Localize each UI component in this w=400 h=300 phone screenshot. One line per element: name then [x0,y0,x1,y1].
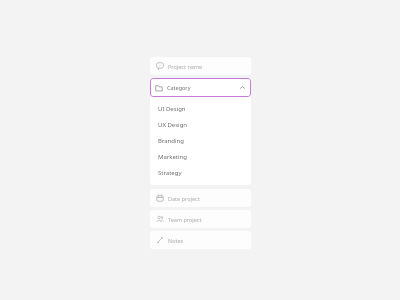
staticText: Team project [168,216,202,223]
staticText: Branding [158,137,184,145]
staticText: Category [167,84,191,91]
button[interactable]: Notes [150,231,251,249]
staticText: Date project [168,195,200,202]
button[interactable]: Marketing [150,149,251,165]
staticText: UI Design [158,105,186,113]
staticText: Project name [168,63,203,70]
button[interactable]: UI Design [150,101,251,117]
button[interactable]: UX Design [150,117,251,133]
button[interactable]: Category [150,78,251,97]
button[interactable]: Strategy [150,165,251,181]
button[interactable]: Project name [150,57,251,75]
staticText: UX Design [158,121,188,129]
button[interactable]: Date project [150,189,251,207]
button[interactable]: Team project [150,210,251,228]
button[interactable]: Branding [150,133,251,149]
staticText: Strategy [158,169,182,177]
staticText: Marketing [158,153,187,161]
staticText: Notes [168,237,184,244]
other: Collapse category list [239,84,246,91]
